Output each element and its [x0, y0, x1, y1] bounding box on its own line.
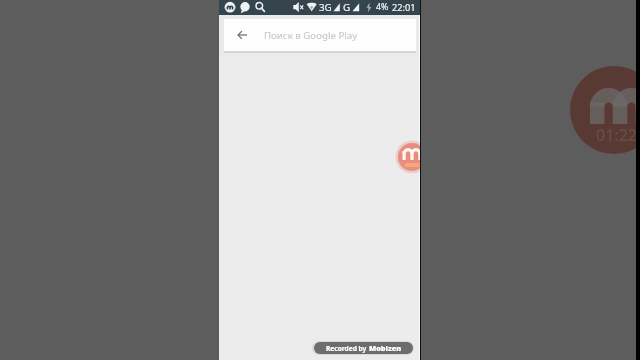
staticText: G: [343, 1, 351, 14]
button[interactable]: Back: [224, 19, 416, 51]
staticText: Mobizen: [369, 343, 402, 353]
staticText: Поиск в Google Play: [264, 29, 358, 42]
staticText: 4%: [376, 1, 389, 13]
staticText: 01:22: [596, 124, 637, 146]
staticText: Recorded by: [326, 344, 369, 353]
staticText: 3G: [319, 1, 332, 14]
staticText: 22:01: [392, 1, 416, 14]
button[interactable]: Back: [233, 26, 251, 44]
